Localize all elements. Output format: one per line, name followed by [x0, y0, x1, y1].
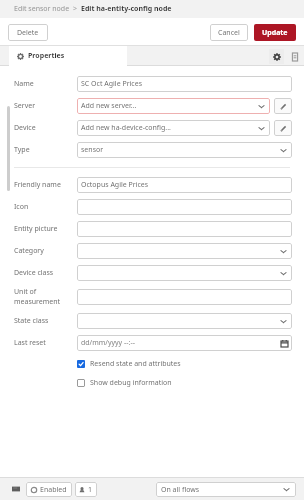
staticText: On all flows — [161, 485, 200, 495]
staticText: Unit of — [14, 287, 37, 297]
button[interactable]: Delete — [8, 24, 48, 41]
staticText: Device class — [14, 268, 54, 278]
button[interactable] — [77, 289, 292, 305]
staticText: Cancel — [218, 28, 240, 38]
button[interactable]: Description — [287, 49, 302, 64]
button[interactable]: Edit — [274, 98, 292, 114]
button[interactable]: Edit — [274, 120, 292, 136]
button[interactable]: Octopus Agile Prices — [77, 177, 292, 193]
button[interactable] — [77, 221, 292, 237]
staticText: Add new server... — [81, 101, 137, 111]
button[interactable]: 1 — [75, 482, 97, 497]
button[interactable] — [77, 199, 292, 215]
button[interactable]: Update — [254, 24, 296, 41]
button[interactable]: Enabled — [26, 482, 72, 497]
staticText: measurement — [14, 297, 61, 307]
button[interactable]: SC Oct Agile Prices — [77, 76, 292, 92]
staticText: Update — [262, 28, 288, 38]
button[interactable]: dd/mm/yyyy --:-- — [77, 335, 292, 351]
button[interactable]: Resend state and attributes — [14, 357, 292, 371]
staticText: Delete — [17, 28, 39, 38]
staticText: Add new ha-device-config... — [81, 123, 171, 133]
button[interactable]: Cancel — [210, 24, 248, 41]
button[interactable]: Show debug information — [14, 376, 292, 390]
button[interactable]: On all flows — [156, 482, 296, 497]
staticText: Device — [14, 123, 36, 133]
staticText: Type — [14, 145, 30, 155]
staticText: State class — [14, 316, 49, 326]
staticText: Edit sensor node — [14, 4, 70, 14]
staticText: Resend state and attributes — [90, 359, 181, 369]
staticText: Last reset — [14, 338, 46, 348]
staticText: Entity picture — [14, 224, 58, 234]
staticText: 1 — [88, 485, 93, 495]
button[interactable]: Add new server... — [77, 98, 270, 114]
button[interactable] — [77, 243, 292, 259]
staticText: Octopus Agile Prices — [81, 180, 149, 190]
button[interactable]: Settings — [269, 49, 284, 64]
button[interactable] — [77, 313, 292, 329]
staticText: Enabled — [40, 485, 67, 495]
staticText: Category — [14, 246, 44, 256]
button[interactable]: sensor — [77, 142, 292, 158]
staticText: Icon — [14, 202, 29, 212]
staticText: sensor — [81, 145, 104, 155]
button[interactable]: Properties — [9, 46, 127, 66]
staticText: dd/mm/yyyy --:-- — [81, 338, 135, 348]
staticText: Friendly name — [14, 180, 61, 190]
staticText: Name — [14, 79, 34, 89]
staticText: > — [73, 4, 78, 14]
staticText: SC Oct Agile Prices — [81, 79, 143, 89]
staticText: Edit ha-entity-config node — [81, 4, 172, 14]
staticText: Properties — [28, 51, 65, 61]
button[interactable]: Node — [8, 481, 24, 497]
button[interactable] — [77, 265, 292, 281]
button[interactable]: Add new ha-device-config... — [77, 120, 270, 136]
staticText: Server — [14, 101, 36, 111]
staticText: Show debug information — [90, 378, 172, 388]
